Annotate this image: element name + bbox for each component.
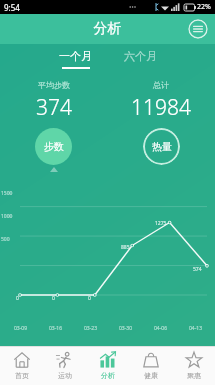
staticText: 步数	[44, 140, 64, 153]
staticText: 22%	[197, 2, 211, 12]
staticText: 500	[1, 236, 10, 243]
staticText: 574	[193, 266, 202, 273]
button[interactable]: Menu	[188, 19, 208, 39]
staticText: 0	[52, 295, 55, 302]
staticText: 04-06	[143, 325, 178, 332]
staticText: 04-13	[178, 325, 213, 332]
button[interactable]: 运动	[43, 347, 86, 385]
staticText: 0	[16, 295, 19, 302]
button[interactable]: 聚惠	[172, 347, 215, 385]
staticText: 03-23	[73, 325, 108, 332]
staticText: 聚惠	[187, 371, 201, 380]
staticText: 03-30	[108, 325, 143, 332]
staticText: 1500	[1, 190, 13, 197]
staticText: 11984	[131, 93, 191, 122]
staticText: 平均步数	[38, 80, 70, 90]
button[interactable]: 六个月	[114, 46, 167, 72]
staticText: 健康	[144, 371, 158, 380]
staticText: 03-09	[3, 325, 38, 332]
staticText: 总计	[153, 80, 169, 90]
staticText: 374	[36, 93, 72, 122]
button[interactable]: 热量	[143, 128, 180, 165]
staticText: 六个月	[124, 49, 157, 63]
staticText: 1275	[155, 220, 167, 227]
button[interactable]: 步数	[35, 128, 72, 165]
staticText: 0	[88, 295, 91, 302]
button[interactable]: 一个月	[49, 46, 102, 72]
staticText: 885	[121, 244, 130, 251]
staticText: 9:54	[4, 2, 20, 13]
staticText: 热量	[152, 140, 172, 153]
staticText: 分析	[0, 20, 215, 38]
staticText: 03-16	[38, 325, 73, 332]
button[interactable]: 首页	[0, 347, 43, 385]
button[interactable]: 分析	[86, 347, 129, 385]
staticText: 首页	[15, 371, 29, 380]
staticText: 分析	[101, 371, 115, 380]
staticText: 运动	[58, 371, 72, 380]
staticText: 1000	[1, 213, 13, 220]
button[interactable]: 健康	[129, 347, 172, 385]
staticText: 一个月	[59, 49, 92, 63]
